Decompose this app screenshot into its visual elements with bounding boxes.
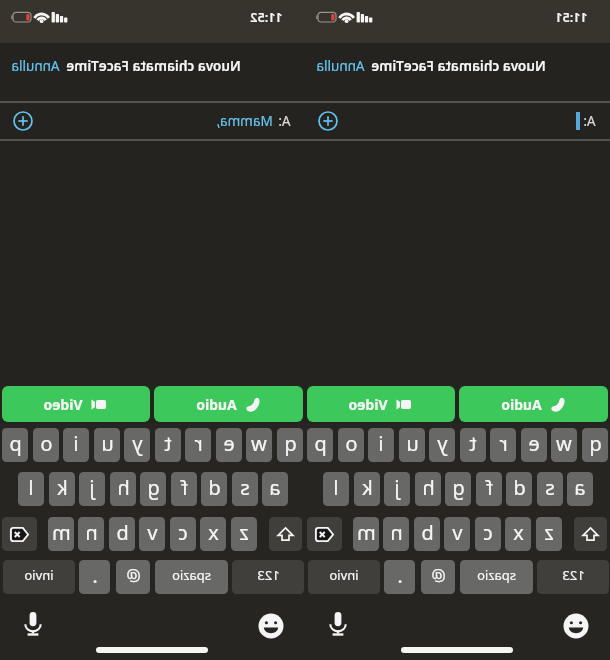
button[interactable]: l: [18, 472, 44, 506]
button[interactable]: h: [415, 472, 441, 506]
button[interactable]: Annulla: [3, 52, 68, 80]
staticText: x: [208, 519, 219, 546]
staticText: j: [394, 474, 400, 501]
button[interactable]: p: [307, 428, 333, 462]
button[interactable]: f: [171, 472, 197, 506]
button[interactable]: 123: [537, 560, 609, 594]
button[interactable]: x: [200, 517, 226, 551]
staticText: p: [9, 430, 22, 457]
button[interactable]: t: [155, 428, 181, 462]
staticText: .: [92, 562, 98, 589]
button[interactable]: Aggiungi contatto: [312, 105, 344, 137]
button[interactable]: Audio: [154, 386, 303, 422]
button[interactable]: i: [368, 428, 394, 462]
button[interactable]: b: [109, 517, 135, 551]
button[interactable]: @: [116, 560, 150, 594]
button[interactable]: z: [536, 517, 562, 551]
button[interactable]: r: [185, 428, 211, 462]
button[interactable]: Emoji: [254, 609, 287, 642]
staticText: @: [431, 564, 446, 586]
button[interactable]: r: [490, 428, 516, 462]
button[interactable]: spazio: [155, 560, 228, 594]
staticText: o: [345, 430, 358, 457]
button[interactable]: m: [353, 517, 379, 551]
button[interactable]: [574, 517, 607, 551]
button[interactable]: k: [49, 472, 75, 506]
button[interactable]: i: [63, 428, 89, 462]
button[interactable]: t: [460, 428, 486, 462]
button[interactable]: Dettatura: [322, 608, 354, 640]
button[interactable]: h: [110, 472, 136, 506]
button[interactable]: u: [399, 428, 425, 462]
button[interactable]: 123: [232, 560, 304, 594]
staticText: v: [452, 519, 463, 546]
staticText: h: [117, 474, 130, 501]
button[interactable]: Video: [307, 386, 455, 422]
button[interactable]: j: [79, 472, 105, 506]
button[interactable]: spazio: [460, 560, 533, 594]
staticText: spazio: [477, 566, 516, 584]
staticText: spazio: [172, 566, 211, 584]
button[interactable]: @: [421, 560, 455, 594]
button[interactable]: d: [201, 472, 227, 506]
staticText: Audio: [501, 395, 542, 414]
button[interactable]: a: [262, 472, 288, 506]
staticText: d: [513, 474, 526, 501]
button[interactable]: Annulla: [308, 52, 373, 80]
button[interactable]: s: [232, 472, 258, 506]
button[interactable]: m: [48, 517, 74, 551]
button[interactable]: Emoji: [559, 609, 592, 642]
button[interactable]: a: [567, 472, 593, 506]
button[interactable]: y: [124, 428, 150, 462]
button[interactable]: .: [384, 560, 415, 594]
staticText: Annulla: [316, 57, 365, 75]
button[interactable]: Dettatura: [17, 608, 49, 640]
button[interactable]: c: [170, 517, 196, 551]
button[interactable]: p: [2, 428, 28, 462]
staticText: e: [223, 430, 235, 457]
button[interactable]: q: [582, 428, 608, 462]
button[interactable]: b: [414, 517, 440, 551]
staticText: c: [483, 519, 493, 546]
button[interactable]: e: [216, 428, 242, 462]
staticText: g: [147, 474, 160, 501]
button[interactable]: x: [505, 517, 531, 551]
button[interactable]: v: [139, 517, 165, 551]
button[interactable]: [307, 517, 342, 551]
button[interactable]: n: [78, 517, 104, 551]
button[interactable]: f: [476, 472, 502, 506]
staticText: @: [126, 564, 141, 586]
button[interactable]: invio: [3, 560, 75, 594]
button[interactable]: g: [445, 472, 471, 506]
button[interactable]: k: [354, 472, 380, 506]
button[interactable]: .: [79, 560, 110, 594]
button[interactable]: c: [475, 517, 501, 551]
button[interactable]: u: [94, 428, 120, 462]
button[interactable]: v: [444, 517, 470, 551]
staticText: Mamma,: [216, 112, 273, 130]
button[interactable]: w: [246, 428, 272, 462]
staticText: k: [57, 474, 68, 501]
button[interactable]: [269, 517, 302, 551]
button[interactable]: z: [231, 517, 257, 551]
button[interactable]: j: [384, 472, 410, 506]
staticText: m: [52, 519, 71, 546]
button[interactable]: invio: [308, 560, 380, 594]
button[interactable]: s: [537, 472, 563, 506]
button[interactable]: o: [338, 428, 364, 462]
button[interactable]: n: [383, 517, 409, 551]
button[interactable]: w: [551, 428, 577, 462]
button[interactable]: o: [33, 428, 59, 462]
button[interactable]: Aggiungi contatto: [7, 105, 39, 137]
button[interactable]: d: [506, 472, 532, 506]
button[interactable]: q: [277, 428, 303, 462]
staticText: g: [452, 474, 465, 501]
button[interactable]: Video: [2, 386, 150, 422]
button[interactable]: y: [429, 428, 455, 462]
staticText: invio: [24, 566, 54, 584]
button[interactable]: g: [140, 472, 166, 506]
button[interactable]: Audio: [459, 386, 608, 422]
button[interactable]: e: [521, 428, 547, 462]
button[interactable]: [2, 517, 37, 551]
button[interactable]: l: [323, 472, 349, 506]
